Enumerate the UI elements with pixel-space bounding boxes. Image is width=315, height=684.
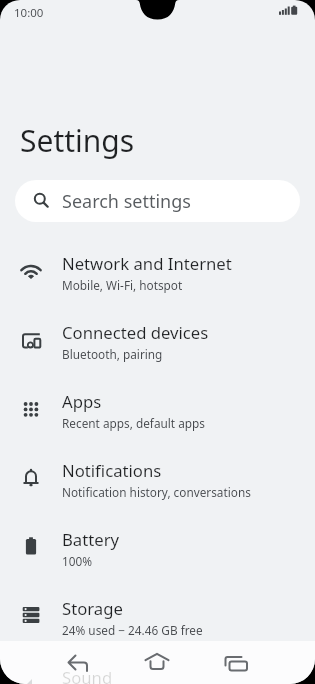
staticText: Storage bbox=[62, 597, 123, 620]
button[interactable]: Search settings bbox=[15, 180, 300, 222]
staticText: Notifications bbox=[62, 459, 162, 482]
staticText: Settings bbox=[20, 120, 135, 161]
staticText: Network and Internet bbox=[62, 252, 232, 275]
button[interactable]: Battery bbox=[0, 514, 315, 583]
button[interactable]: Notifications bbox=[0, 445, 315, 514]
button[interactable] bbox=[212, 641, 260, 684]
button[interactable] bbox=[133, 641, 181, 684]
staticText: Battery bbox=[62, 528, 120, 551]
staticText: Apps bbox=[62, 390, 102, 413]
staticText: Connected devices bbox=[62, 321, 209, 344]
button[interactable]: Connected devices bbox=[0, 307, 315, 376]
staticText: Sound bbox=[62, 666, 113, 684]
staticText: Mobile, Wi-Fi, hotspot bbox=[62, 277, 183, 293]
staticText: 10:00 bbox=[14, 5, 44, 21]
button[interactable]: Network and Internet bbox=[0, 238, 315, 307]
button[interactable] bbox=[54, 641, 102, 684]
staticText: Notification history, conversations bbox=[62, 484, 251, 500]
staticText: Bluetooth, pairing bbox=[62, 346, 163, 362]
staticText: 24% used − 24.46 GB free bbox=[62, 622, 203, 638]
staticText: Recent apps, default apps bbox=[62, 415, 205, 431]
button[interactable]: Apps bbox=[0, 376, 315, 445]
staticText: 100% bbox=[62, 553, 93, 569]
button[interactable]: Storage bbox=[0, 583, 315, 652]
button[interactable]: Sound bbox=[0, 652, 315, 684]
staticText: Search settings bbox=[62, 189, 191, 214]
